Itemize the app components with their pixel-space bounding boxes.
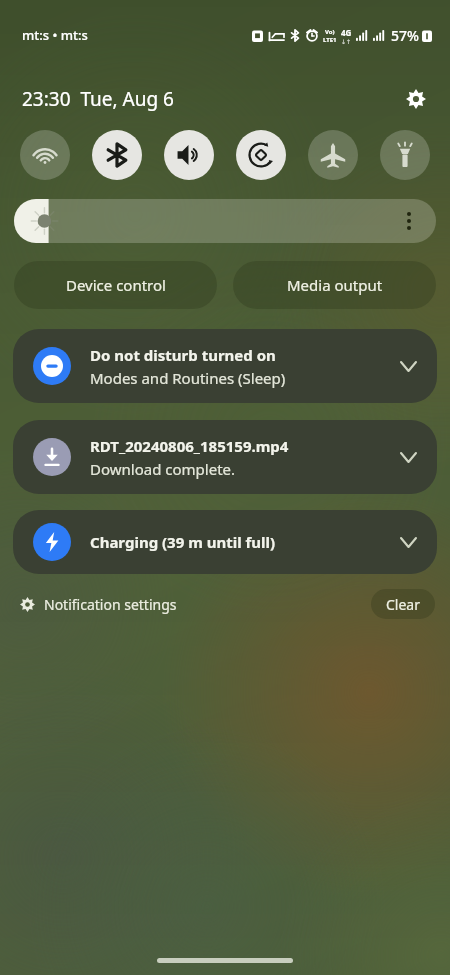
button[interactable]: Media output [233,261,436,309]
button[interactable]: Expand [393,351,423,381]
button[interactable]: Flashlight [380,130,430,180]
button[interactable]: Brightness options [392,204,426,238]
staticText: 4G [341,27,352,38]
button[interactable]: Notification settings [16,592,181,617]
button[interactable]: Do not disturb turned on [13,329,437,403]
staticText: Media output [287,275,383,295]
staticText: LTE1 [323,36,337,44]
staticText: Device control [66,275,166,295]
button[interactable]: Expand [393,527,423,557]
button[interactable]: Airplane mode [308,130,358,180]
button[interactable]: Settings [399,84,433,114]
staticText: 23:30 Tue, Aug 6 [22,86,174,112]
button[interactable]: Wi-Fi [20,130,70,180]
staticText: Do not disturb turned on [90,345,276,365]
button[interactable]: Device control [14,261,217,309]
button[interactable]: RDT_20240806_185159.mp4 [13,420,437,494]
staticText: 57% [391,26,419,45]
button[interactable]: Brightness [14,199,436,243]
staticText: Download complete. [90,459,236,479]
staticText: Notification settings [44,595,177,614]
button[interactable]: Auto rotate [236,130,286,180]
staticText: Vo) [325,28,335,36]
button[interactable]: Volume [164,130,214,180]
staticText: Modes and Routines (Sleep) [90,368,286,388]
staticText: mt:s • mt:s [22,26,88,44]
staticText: RDT_20240806_185159.mp4 [90,436,289,456]
button[interactable]: Bluetooth [92,130,142,180]
staticText: Charging (39 m until full) [90,532,276,552]
button[interactable]: Clear [371,589,435,619]
button[interactable]: Expand [393,442,423,472]
button[interactable]: Charging (39 m until full) [13,510,437,574]
staticText: ↓↑ [341,38,352,45]
staticText: Clear [386,595,420,614]
